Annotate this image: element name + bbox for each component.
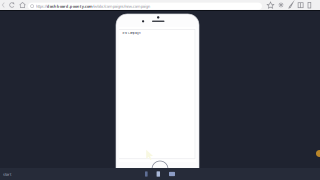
staticText: dashboard.poonty.com — [47, 3, 93, 9]
staticText: Test Campaign — [122, 31, 141, 35]
button[interactable]: https:// — [28, 1, 262, 11]
button[interactable]: Split view — [296, 0, 303, 10]
button[interactable]: Support chat — [316, 150, 320, 157]
button[interactable]: Back — [0, 0, 8, 10]
button[interactable]: Files — [145, 171, 148, 177]
button[interactable]: Terminal — [169, 172, 175, 176]
button[interactable]: Reload — [7, 0, 16, 10]
button[interactable]: Home — [17, 0, 26, 10]
button[interactable]: Annotate — [287, 0, 294, 10]
button[interactable]: Menu — [306, 0, 312, 10]
button[interactable]: Browser — [157, 171, 160, 177]
staticText: start — [3, 171, 11, 177]
staticText: https:// — [36, 3, 47, 9]
button[interactable]: Bookmark — [266, 0, 274, 10]
button[interactable]: Extensions — [276, 0, 284, 10]
staticText: /w/abc/campaigns/new-campaign — [93, 3, 150, 9]
